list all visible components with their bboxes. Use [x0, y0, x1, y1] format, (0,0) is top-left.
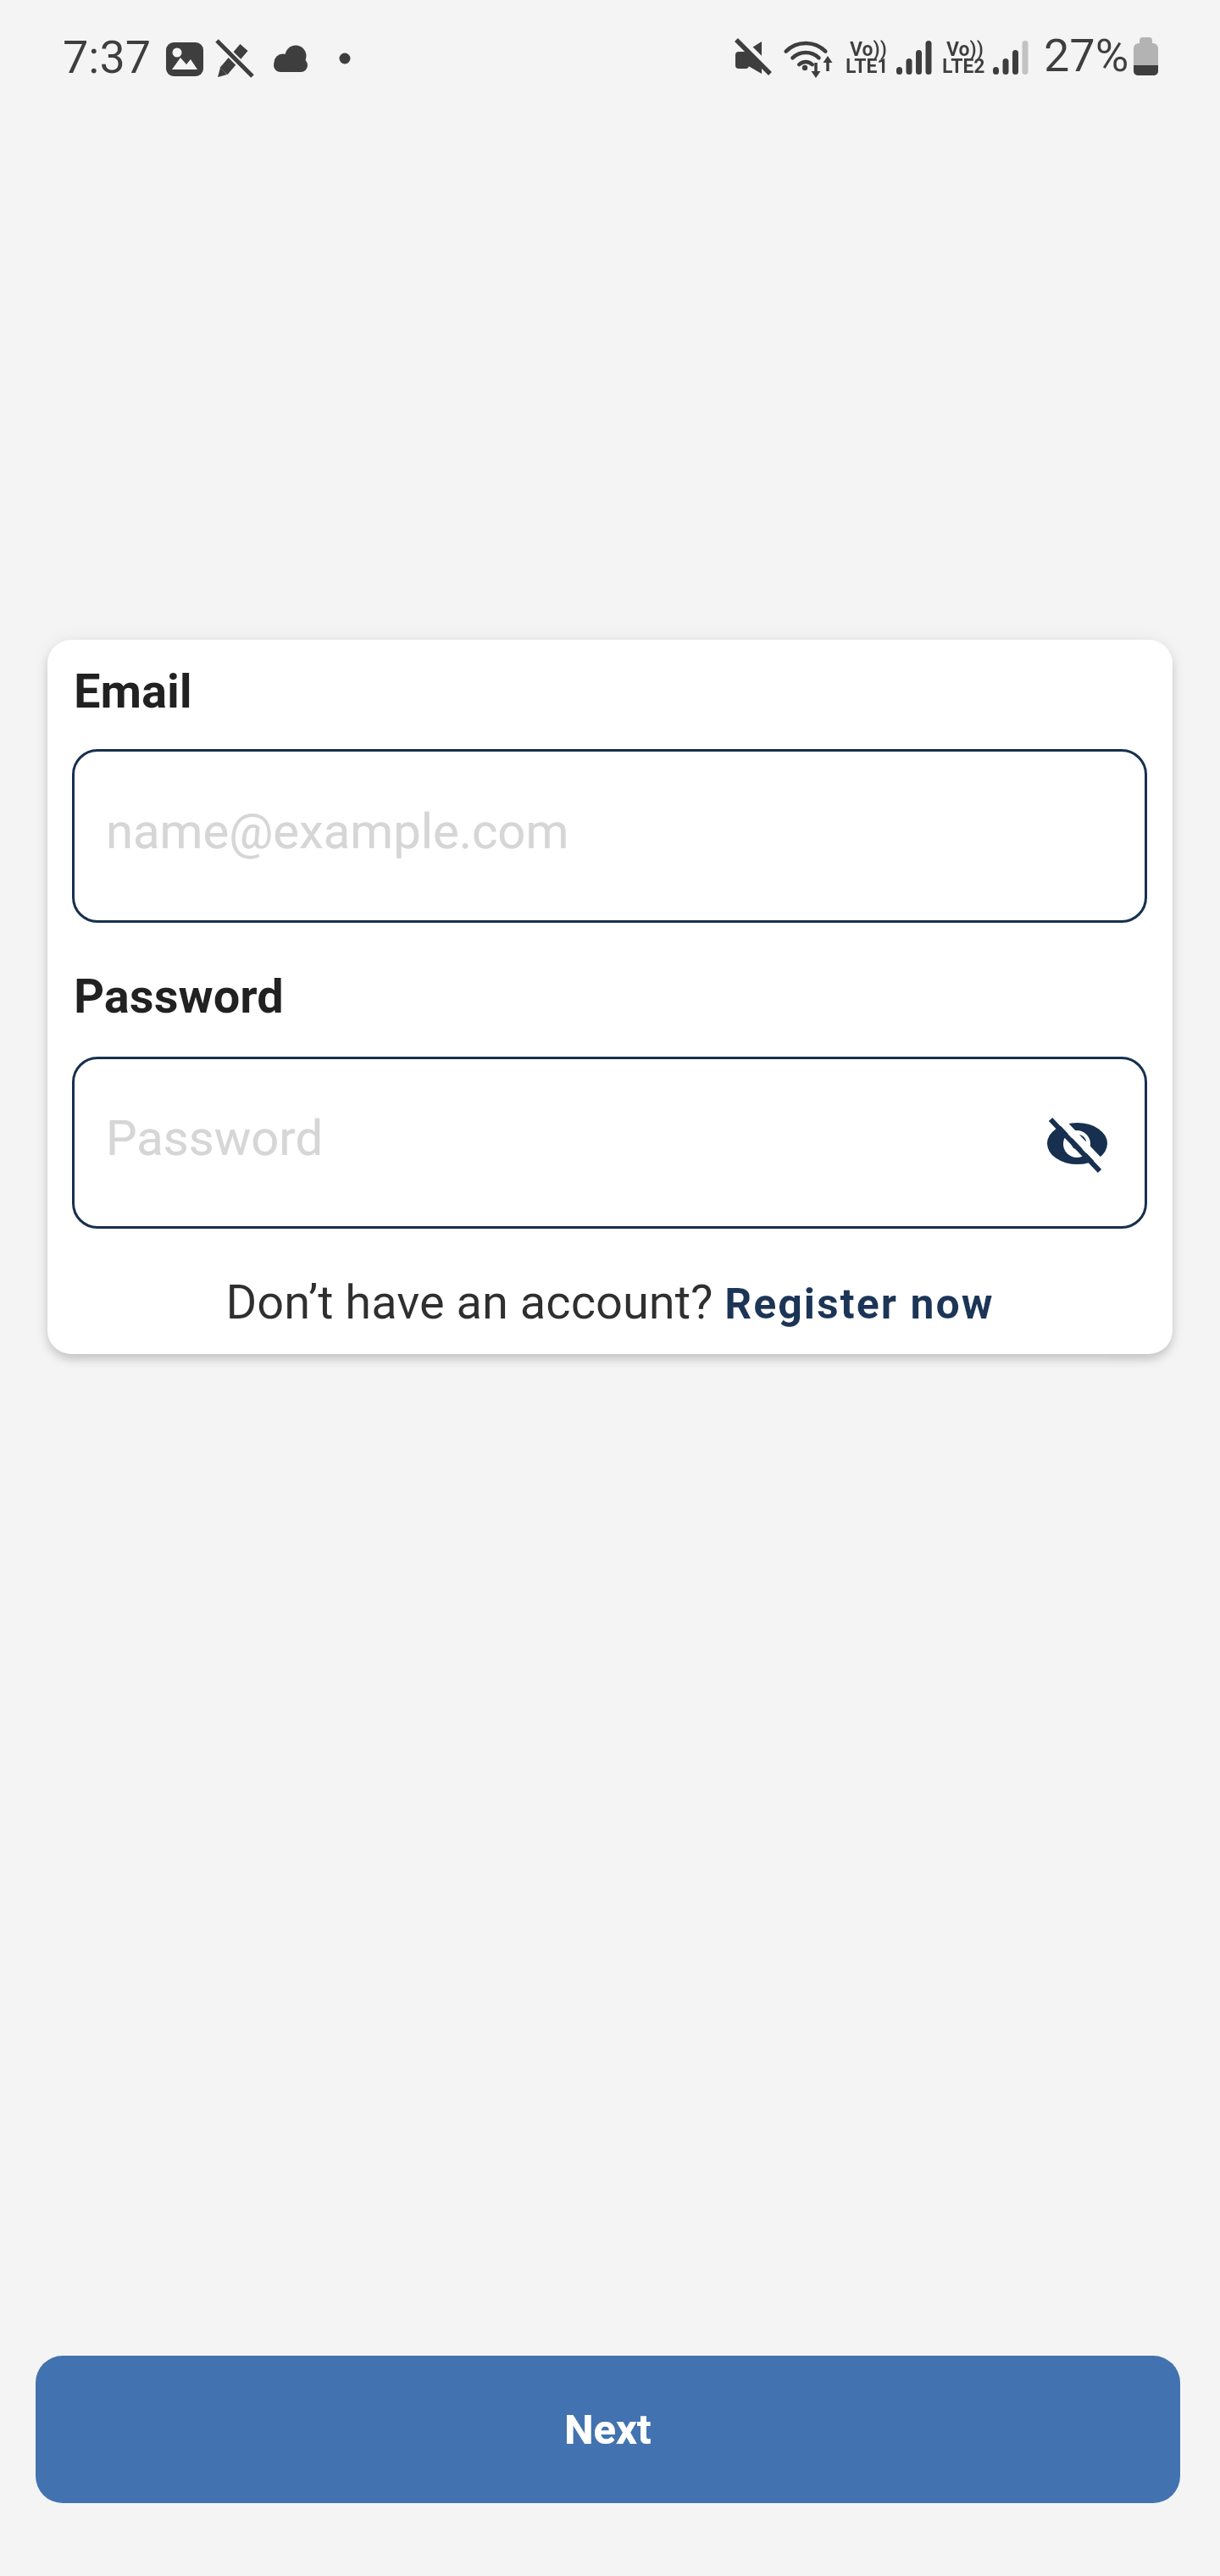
staticText: LTE1 [846, 55, 889, 78]
button[interactable] [72, 749, 1147, 923]
button[interactable] [72, 1057, 1147, 1229]
staticText: Password [106, 1109, 324, 1167]
button[interactable] [1044, 1110, 1112, 1178]
button[interactable]: Don’t have an account? Register now [0, 1274, 1220, 1330]
staticText: LTE2 [942, 55, 985, 78]
staticText: Vo)) [946, 38, 984, 61]
button[interactable]: Next [36, 2356, 1180, 2503]
staticText: 27% [1044, 29, 1129, 82]
staticText: name@example.com [106, 802, 569, 860]
staticText: Password [74, 969, 284, 1024]
staticText: Email [74, 663, 192, 719]
staticText: 7:37 [63, 31, 152, 84]
staticText: Next [564, 2406, 652, 2454]
staticText: Vo)) [850, 38, 887, 61]
